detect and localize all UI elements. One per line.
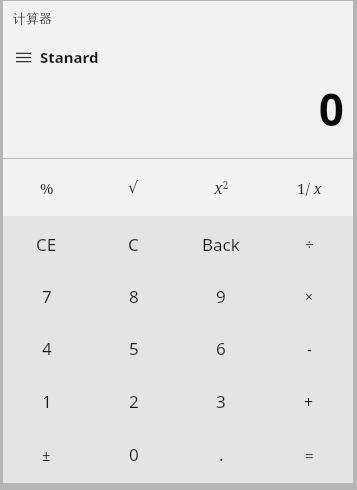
staticText: 1 [42, 390, 52, 413]
staticText: CE [36, 233, 57, 256]
staticText: Back [202, 233, 240, 256]
other: Menu [16, 51, 31, 64]
button[interactable]: √ [90, 159, 177, 216]
button[interactable]: 2 [90, 375, 177, 428]
staticText: Stanard [40, 47, 99, 67]
staticText: 8 [129, 285, 139, 308]
staticText: x2 [214, 177, 229, 199]
staticText: = [305, 445, 314, 465]
button[interactable]: % [3, 159, 90, 216]
staticText: 3 [216, 390, 226, 413]
staticText: 6 [216, 337, 226, 360]
button[interactable]: + [265, 375, 353, 428]
button[interactable]: x2 [177, 159, 265, 216]
button[interactable]: 8 [90, 270, 177, 322]
staticText: 计算器 [13, 10, 52, 26]
button[interactable]: 4 [3, 322, 90, 375]
staticText: 2 [129, 390, 139, 413]
staticText: ÷ [305, 234, 314, 254]
button[interactable]: 0 [90, 428, 177, 481]
button[interactable]: - [265, 322, 353, 375]
staticText: √ [128, 178, 139, 197]
button[interactable]: . [177, 428, 265, 481]
button[interactable]: = [265, 428, 353, 481]
staticText: 9 [216, 285, 226, 308]
button[interactable]: 1/ x [265, 159, 353, 216]
button[interactable]: ± [3, 428, 90, 481]
staticText: × [305, 287, 314, 306]
staticText: . [219, 443, 224, 466]
staticText: % [40, 178, 54, 198]
staticText: 7 [42, 285, 52, 308]
staticText: ± [42, 445, 51, 465]
staticText: 4 [42, 337, 52, 360]
staticText: 1/ x [297, 178, 322, 198]
staticText: 0 [318, 79, 344, 139]
button[interactable]: 3 [177, 375, 265, 428]
button[interactable]: × [265, 270, 353, 322]
button[interactable]: CE [3, 218, 90, 270]
button[interactable]: 9 [177, 270, 265, 322]
button[interactable]: ÷ [265, 218, 353, 270]
button[interactable]: 6 [177, 322, 265, 375]
staticText: 0 [129, 443, 139, 466]
button[interactable]: 1 [3, 375, 90, 428]
button[interactable]: Menu [11, 43, 104, 71]
button[interactable]: Back [177, 218, 265, 270]
button[interactable]: 5 [90, 322, 177, 375]
staticText: 5 [129, 337, 139, 360]
button[interactable]: 7 [3, 270, 90, 322]
staticText: + [304, 391, 314, 413]
button[interactable]: C [90, 218, 177, 270]
staticText: C [128, 233, 139, 256]
staticText: - [307, 339, 312, 359]
